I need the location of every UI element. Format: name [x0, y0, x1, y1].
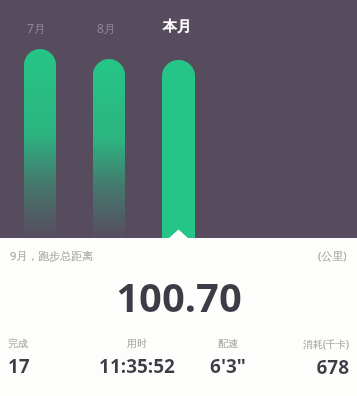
staticText: 17: [8, 353, 30, 379]
staticText: 消耗(千卡): [303, 337, 349, 351]
button[interactable]: 本月 柱状图: [162, 60, 195, 238]
staticText: 配速: [218, 337, 238, 350]
button[interactable]: 8月 柱状图: [93, 59, 125, 238]
button[interactable]: 本月: [163, 18, 191, 36]
button[interactable]: 用时: [84, 337, 190, 379]
button[interactable]: 7月 柱状图: [24, 49, 56, 238]
staticText: 11:35:52: [99, 353, 175, 379]
staticText: 9月，跑步总距离: [10, 248, 94, 263]
button[interactable]: 完成: [8, 337, 84, 379]
button[interactable]: 配速: [190, 337, 266, 379]
staticText: (公里): [318, 248, 347, 263]
staticText: 100.70: [116, 269, 242, 323]
staticText: 用时: [127, 337, 147, 350]
button[interactable]: 7月: [27, 20, 46, 36]
staticText: 6'3": [210, 353, 246, 379]
staticText: 678: [316, 354, 349, 380]
staticText: 完成: [8, 337, 28, 350]
button[interactable]: 消耗(千卡): [266, 337, 349, 380]
button[interactable]: 8月: [97, 20, 116, 36]
